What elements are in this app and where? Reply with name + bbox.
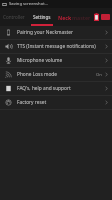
button[interactable]: TTS (Instant message notifications) <box>0 40 112 53</box>
staticText: FAQ's, help and support <box>17 85 71 92</box>
button[interactable]: Microphone volume <box>0 54 112 67</box>
button[interactable]: Battery status <box>91 12 101 22</box>
staticText: On <box>96 72 102 78</box>
staticText: Controller <box>3 14 25 20</box>
button[interactable]: Controller <box>0 8 28 26</box>
button[interactable]: Phone Loss mode <box>0 68 112 81</box>
button[interactable]: Settings <box>28 8 56 26</box>
staticText: Factory reset <box>17 99 47 106</box>
staticText: Microphone volume <box>17 57 63 64</box>
staticText: Pairing your Neckmaster <box>17 29 73 36</box>
button[interactable]: Pairing your Neckmaster <box>0 26 112 39</box>
button[interactable]: Device status <box>101 14 110 20</box>
button[interactable]: FAQ's, help and support <box>0 82 112 95</box>
staticText: TTS (Instant message notifications) <box>17 43 96 50</box>
staticText: Phone Loss mode <box>17 71 57 78</box>
button[interactable]: Factory reset <box>0 96 112 109</box>
staticText: master <box>72 14 91 21</box>
staticText: Neck <box>58 14 72 21</box>
staticText: Settings <box>33 14 51 20</box>
staticText: Saving screenshot… <box>9 1 49 7</box>
